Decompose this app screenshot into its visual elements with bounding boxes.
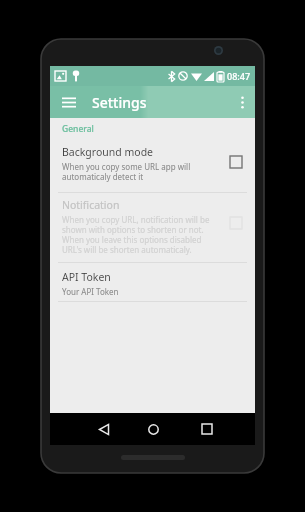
button[interactable]: Background mode checkbox — [228, 154, 244, 170]
staticText: Background mode — [62, 145, 154, 159]
staticText: When you copy some URL app will automati… — [62, 161, 212, 182]
button[interactable]: More options — [229, 86, 255, 118]
staticText: Your API Token — [62, 286, 119, 297]
button[interactable]: Home — [137, 413, 169, 445]
button[interactable]: Background mode — [50, 140, 255, 192]
button[interactable]: API Token — [50, 263, 255, 301]
button[interactable]: Open navigation drawer — [55, 86, 83, 118]
staticText: API Token — [62, 270, 111, 284]
staticText: Settings — [92, 93, 147, 112]
staticText: Notification — [62, 198, 120, 212]
staticText: 08:47 — [227, 70, 251, 82]
staticText: General — [62, 123, 94, 135]
button[interactable]: Recent apps — [191, 413, 223, 445]
button[interactable]: Back — [88, 413, 120, 445]
staticText: When you copy URL, notification will be … — [62, 214, 214, 255]
